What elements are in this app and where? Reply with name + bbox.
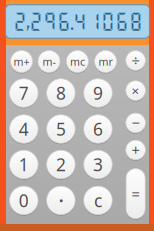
button[interactable]: 6 bbox=[82, 113, 114, 145]
button[interactable]: 7 bbox=[8, 77, 40, 109]
staticText: 1 bbox=[19, 153, 29, 176]
button[interactable]: 4 bbox=[8, 113, 40, 145]
staticText: · bbox=[58, 187, 63, 214]
staticText: m+ bbox=[14, 54, 30, 69]
button[interactable]: × bbox=[124, 79, 147, 102]
staticText: 8 bbox=[56, 81, 66, 104]
staticText: + bbox=[132, 140, 140, 160]
staticText: 0 bbox=[19, 189, 29, 212]
button[interactable]: mc bbox=[65, 49, 90, 74]
button[interactable]: m- bbox=[36, 49, 61, 74]
staticText: 3 bbox=[93, 153, 103, 176]
staticText: c bbox=[94, 189, 102, 212]
staticText: 9 bbox=[93, 81, 103, 104]
staticText: 4 bbox=[19, 117, 29, 140]
staticText: 5 bbox=[56, 117, 66, 140]
button[interactable]: + bbox=[124, 139, 147, 161]
button[interactable]: 0 bbox=[8, 185, 40, 216]
staticText: 6 bbox=[93, 117, 103, 140]
staticText: mr bbox=[99, 54, 113, 69]
button[interactable]: 8 bbox=[45, 77, 77, 109]
button[interactable]: = bbox=[125, 167, 147, 220]
button[interactable]: 3 bbox=[82, 149, 114, 180]
staticText: = bbox=[132, 184, 140, 203]
button[interactable]: c bbox=[82, 185, 114, 216]
button[interactable]: 5 bbox=[45, 113, 77, 145]
button[interactable]: mr bbox=[93, 49, 118, 74]
staticText: × bbox=[132, 82, 140, 99]
button[interactable]: − bbox=[124, 112, 147, 134]
button[interactable]: 2 bbox=[45, 149, 77, 180]
staticText: ÷ bbox=[132, 51, 140, 70]
button[interactable]: 9 bbox=[82, 77, 114, 109]
staticText: 7 bbox=[19, 81, 29, 104]
button[interactable]: · bbox=[45, 185, 77, 216]
button[interactable]: ÷ bbox=[124, 49, 147, 72]
staticText: − bbox=[132, 113, 140, 133]
staticText: 2,296.41068 bbox=[13, 10, 143, 32]
staticText: m- bbox=[42, 54, 55, 69]
staticText: mc bbox=[70, 54, 85, 69]
button[interactable]: 1 bbox=[8, 149, 40, 180]
staticText: 2 bbox=[56, 153, 66, 176]
button[interactable]: m+ bbox=[9, 49, 34, 74]
